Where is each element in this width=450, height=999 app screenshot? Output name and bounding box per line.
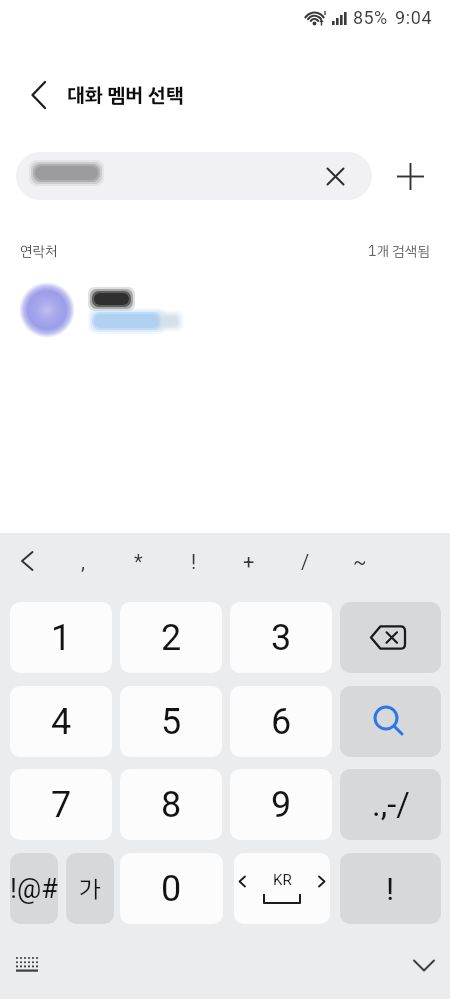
staticText: , (81, 550, 85, 573)
staticText: 대화 멤버 선택 (67, 80, 184, 110)
staticText: 2 (161, 617, 182, 659)
staticText: 1 (51, 617, 72, 659)
button[interactable]: 5 (120, 686, 222, 757)
button[interactable]: !@# (10, 853, 58, 924)
button[interactable]: ~ (340, 546, 380, 576)
button[interactable]: ! (174, 546, 214, 576)
staticText: ~ (353, 550, 367, 573)
staticText: 5 (161, 701, 182, 743)
staticText: 85% (353, 7, 388, 28)
button[interactable]: 0 (120, 853, 223, 924)
button[interactable] (406, 948, 442, 982)
button[interactable]: 6 (230, 686, 332, 757)
staticText: 7 (51, 784, 72, 826)
button[interactable]: 9 (230, 769, 332, 840)
button[interactable] (0, 276, 450, 342)
button[interactable]: 3 (230, 602, 332, 673)
staticText: 가 (79, 871, 101, 907)
button[interactable]: KR (234, 853, 330, 924)
button[interactable]: 4 (10, 686, 112, 757)
button[interactable] (14, 546, 40, 576)
button[interactable]: + (229, 546, 269, 576)
button[interactable] (340, 686, 441, 757)
staticText: KR (273, 871, 292, 889)
staticText: 6 (271, 701, 292, 743)
button[interactable]: * (118, 546, 158, 576)
button[interactable] (10, 948, 44, 982)
staticText: 0 (161, 868, 182, 910)
button[interactable] (16, 152, 372, 200)
button[interactable]: / (285, 546, 325, 576)
button[interactable]: 가 (66, 853, 114, 924)
staticText: 1개 검색됨 (368, 241, 430, 262)
button[interactable]: 8 (120, 769, 222, 840)
button[interactable] (318, 159, 352, 193)
button[interactable]: ! (340, 853, 441, 924)
staticText: !@# (10, 873, 58, 905)
staticText: ! (191, 550, 197, 573)
button[interactable]: 2 (120, 602, 222, 673)
staticText: 연락처 (20, 241, 58, 262)
button[interactable] (22, 78, 56, 112)
staticText: 9:04 (395, 7, 433, 28)
staticText: 3 (271, 617, 292, 659)
staticText: 4 (51, 701, 72, 743)
button[interactable]: 1 (10, 602, 112, 673)
button[interactable]: .,-/ (340, 769, 441, 840)
button[interactable]: , (63, 546, 103, 576)
button[interactable]: 7 (10, 769, 112, 840)
staticText: + (243, 550, 255, 573)
staticText: ! (386, 870, 395, 908)
button[interactable] (392, 158, 428, 194)
staticText: .,-/ (372, 785, 410, 824)
staticText: * (134, 550, 143, 573)
button[interactable] (340, 602, 441, 673)
staticText: / (301, 550, 310, 573)
staticText: 8 (161, 784, 182, 826)
staticText: 9 (271, 784, 292, 826)
